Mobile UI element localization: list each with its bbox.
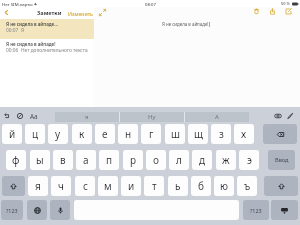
button[interactable]: и [121,176,141,196]
staticText: б [198,179,204,193]
button[interactable]: Back [3,9,10,16]
staticText: х [241,127,247,141]
button[interactable]: ф [6,150,26,170]
staticText: е [102,127,108,141]
staticText: Я не сидела в айпаде! [6,41,56,47]
button[interactable]: Aa [29,112,39,120]
button[interactable]: Voice input [50,200,70,220]
button[interactable]: т [144,176,164,196]
button[interactable]: ц [25,124,45,144]
button[interactable]: в [53,150,73,170]
button[interactable]: е [95,124,115,144]
button[interactable]: Share [269,8,276,15]
button[interactable]: Markup [286,112,294,120]
button[interactable]: у [48,124,68,144]
button[interactable]: Formatting [16,112,24,120]
staticText: Заметки [37,9,62,17]
button[interactable]: н [118,124,138,144]
staticText: я [35,179,41,193]
staticText: ю [220,179,228,193]
button[interactable]: Hide keyboard [271,200,298,220]
staticText: м [104,179,112,193]
staticText: 00:07 [6,27,19,34]
button[interactable]: ъ [237,176,257,196]
button[interactable]: з [211,124,231,144]
button[interactable]: б [191,176,211,196]
staticText: Ввод [275,156,289,164]
button[interactable]: ш [165,124,185,144]
staticText: Aa [30,112,38,120]
staticText: 50 % [281,1,291,6]
staticText: я [85,113,89,121]
button[interactable]: Я не сидела в айпаде! [0,39,94,59]
staticText: э [247,153,252,167]
staticText: ы [36,153,44,167]
button[interactable]: д [192,150,212,170]
button[interactable]: я [55,112,119,122]
button[interactable]: я [28,176,48,196]
staticText: г [149,127,154,141]
button[interactable]: Изменить [66,9,95,18]
staticText: а [83,153,89,167]
button[interactable]: Change language [27,200,47,220]
button[interactable]: а [76,150,96,170]
staticText: ф [12,153,20,167]
button[interactable]: Expand [99,9,106,16]
button[interactable]: ?123 [243,200,269,220]
staticText: А [215,113,219,121]
button[interactable]: New note [285,8,292,15]
button[interactable]: ь [168,176,188,196]
button[interactable]: л [169,150,189,170]
staticText: Изменить [68,10,93,17]
button[interactable]: Shift [2,176,25,196]
staticText: л [176,153,182,167]
staticText: т [152,179,157,193]
button[interactable]: х [234,124,254,144]
button[interactable]: Ну [120,112,184,122]
staticText: щ [194,127,203,141]
staticText: Я не сидела в айпаде! [162,21,209,27]
button[interactable]: ?123 [1,200,23,220]
button[interactable]: Undo [3,112,11,120]
staticText: у [55,127,61,141]
staticText: з [219,127,224,141]
button[interactable]: Backspace [263,124,297,144]
staticText: к [79,127,85,141]
staticText: ц [32,127,39,141]
staticText: 08:07 [145,1,156,7]
button[interactable]: Ввод [268,150,295,170]
button[interactable]: щ [188,124,208,144]
staticText: ь [175,179,181,193]
button[interactable]: к [72,124,92,144]
staticText: Нет SIM-карты [2,1,33,7]
button[interactable]: ю [214,176,234,196]
button[interactable]: ж [216,150,236,170]
staticText: о [153,153,159,167]
staticText: в [60,153,66,167]
button[interactable]: й [2,124,22,144]
button[interactable]: А [185,112,249,122]
button[interactable]: Я не сидела в айпаде... [0,19,94,39]
staticText: п [106,153,113,167]
button[interactable]: о [146,150,166,170]
button[interactable]: р [123,150,143,170]
staticText: ж [222,153,230,167]
button[interactable]: Camera [274,112,282,120]
button[interactable]: ы [30,150,50,170]
button[interactable]: ч [51,176,71,196]
staticText: ?123 [6,207,18,214]
staticText: д [199,153,206,167]
button[interactable]: г [141,124,161,144]
button[interactable]: м [98,176,118,196]
button[interactable]: Delete [253,8,260,15]
staticText: 00:06 [6,47,19,54]
button[interactable]: п [99,150,119,170]
staticText: ч [58,179,64,193]
staticText: Ну [148,113,156,121]
button[interactable]: э [239,150,259,170]
button[interactable]: с [75,176,95,196]
staticText: Я [21,27,25,34]
button[interactable]: Caps lock [264,176,298,196]
staticText: с [83,179,88,193]
